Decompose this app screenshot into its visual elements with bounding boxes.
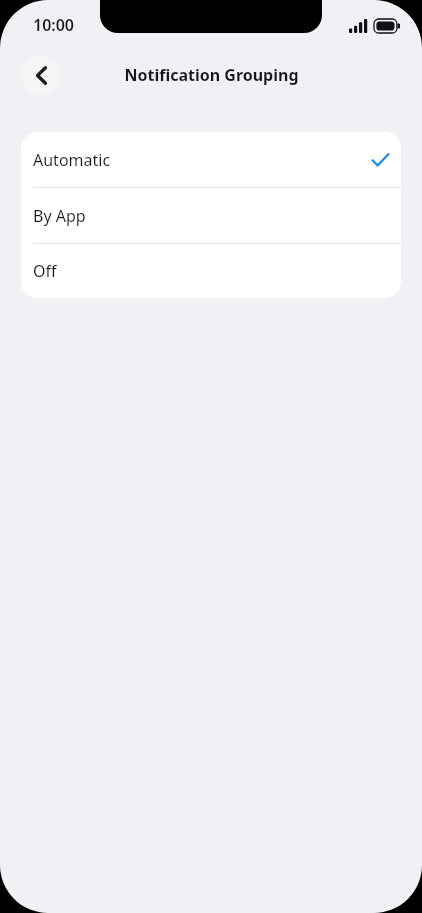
button[interactable]: Back bbox=[21, 55, 61, 95]
button[interactable]: Off bbox=[21, 244, 401, 298]
button[interactable]: Automatic bbox=[21, 132, 401, 187]
staticText: Off bbox=[33, 260, 57, 282]
staticText: Notification Grouping bbox=[124, 64, 299, 86]
staticText: 10:00 bbox=[33, 14, 75, 36]
button[interactable]: By App bbox=[21, 188, 401, 243]
staticText: Automatic bbox=[33, 149, 111, 171]
staticText: By App bbox=[33, 205, 86, 227]
